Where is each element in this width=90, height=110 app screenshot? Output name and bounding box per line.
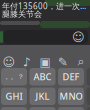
- staticText: ☺: [2, 55, 15, 69]
- staticText: ✎: [58, 55, 68, 69]
- staticText: 年付135600，进一次服务，脏: [2, 1, 90, 11]
- button[interactable]: 换行: [86, 107, 90, 110]
- staticText: ，。？: [3, 73, 24, 81]
- button[interactable]: Message field: [4, 30, 88, 44]
- button[interactable]: DEF: [58, 68, 84, 85]
- staticText: ABC: [33, 71, 51, 83]
- staticText: GHI: [5, 90, 22, 102]
- button[interactable]: TUV: [29, 107, 55, 110]
- button[interactable]: ⌫: [86, 68, 90, 85]
- button[interactable]: Search: [72, 53, 90, 71]
- button[interactable]: JKL: [29, 87, 55, 105]
- button[interactable]: PQRS: [1, 107, 27, 110]
- staticText: 腿膝关节会: [2, 9, 42, 19]
- button[interactable]: 分词: [86, 87, 90, 105]
- button[interactable]: Handwriting: [54, 53, 72, 71]
- staticText: ⌕: [77, 56, 84, 68]
- button[interactable]: Camera: [36, 53, 54, 71]
- staticText: DEF: [62, 71, 79, 83]
- staticText: JKL: [35, 90, 49, 102]
- button[interactable]: Voice input: [18, 53, 36, 71]
- staticText: ▣: [39, 55, 50, 69]
- button[interactable]: Emoji: [0, 53, 18, 71]
- button[interactable]: MNO: [58, 87, 84, 105]
- button[interactable]: WXYZ: [58, 107, 84, 110]
- button[interactable]: ABC: [29, 68, 55, 85]
- staticText: ☺: [72, 30, 85, 44]
- button[interactable]: ，。？: [1, 68, 27, 85]
- button[interactable]: GHI: [1, 87, 27, 105]
- staticText: ♪: [23, 55, 31, 69]
- staticText: MNO: [59, 90, 82, 102]
